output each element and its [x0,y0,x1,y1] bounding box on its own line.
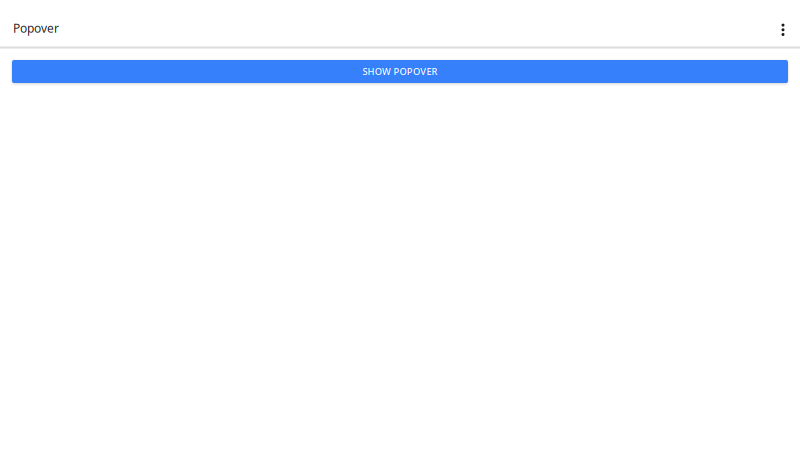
button[interactable]: SHOW POPOVER [12,60,788,83]
staticText: Popover [13,20,59,36]
staticText: SHOW POPOVER [362,65,438,78]
button[interactable]: More options [772,0,794,46]
